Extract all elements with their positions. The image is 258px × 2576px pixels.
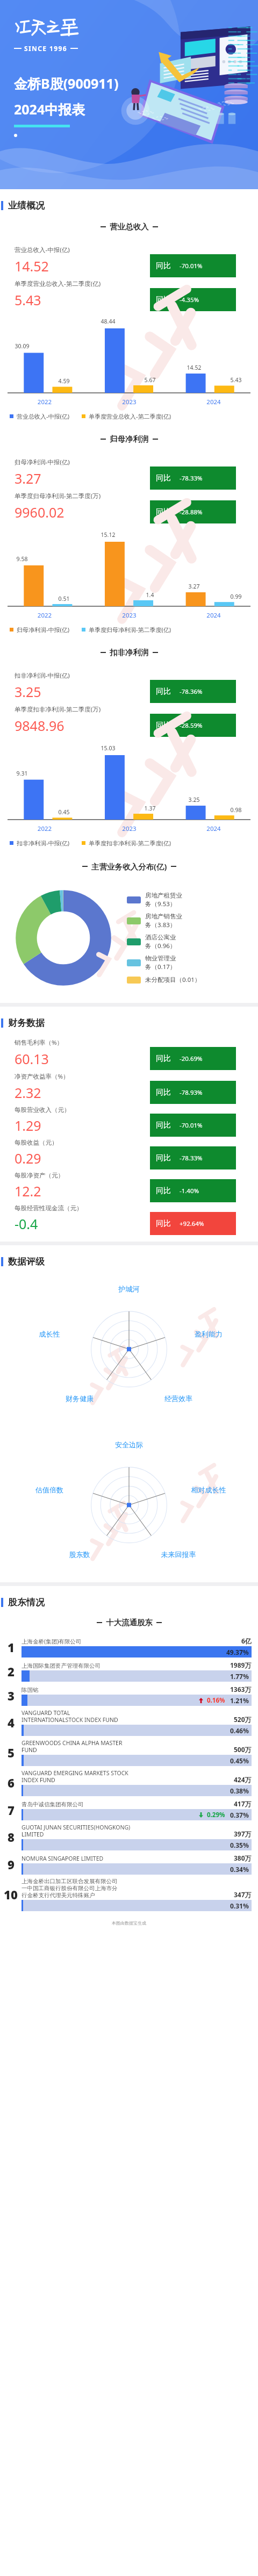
staticText: 单季度营业总收入-第二季度(亿) xyxy=(89,412,171,420)
staticText: 49.37% xyxy=(226,1648,249,1656)
staticText: 5 xyxy=(8,1745,15,1761)
button[interactable]: 酒店公寓业 务（0.96） xyxy=(127,934,255,950)
button[interactable]: 10 xyxy=(0,1878,258,1911)
staticText: 14.52 xyxy=(15,257,49,275)
button[interactable]: 单季度归母净利润-第二季度(万) xyxy=(0,490,258,523)
staticText: 1.37 xyxy=(140,805,160,812)
staticText: 0.45% xyxy=(230,1756,249,1765)
button[interactable]: 业绩概况 xyxy=(0,200,258,211)
button[interactable]: 每股经营性现金流（元） xyxy=(0,1202,258,1235)
staticText: GUOTAI JUNAN SECURITIES(HONGKONG) LIMITE… xyxy=(21,1824,231,1838)
button[interactable]: 未分配项目（0.01） xyxy=(127,975,255,984)
button[interactable]: 房地产销售业 务（3.83） xyxy=(127,913,255,929)
staticText: 9.31 xyxy=(12,770,32,777)
button[interactable]: 4 xyxy=(0,1709,258,1736)
staticText: 0.31% xyxy=(230,1901,249,1910)
button[interactable]: 9 xyxy=(0,1854,258,1875)
staticText: +92.64% xyxy=(180,1219,204,1228)
staticText: 10 xyxy=(4,1886,18,1903)
staticText: 2024 xyxy=(171,398,256,406)
staticText: 1.77% xyxy=(230,1672,249,1681)
staticText: 2.32 xyxy=(15,1084,41,1102)
staticText: 酒店公寓业 务（0.96） xyxy=(145,934,176,950)
button[interactable]: 5 xyxy=(0,1739,258,1766)
staticText: -78.33% xyxy=(180,1154,203,1163)
staticText: 3.27 xyxy=(15,469,41,487)
staticText: 同比 xyxy=(156,261,171,271)
button[interactable]: 房地产租赁业 务（9.53） xyxy=(127,892,255,908)
staticText: 每股经营性现金流（元） xyxy=(15,1204,83,1212)
button[interactable]: 销售毛利率（%） xyxy=(0,1036,258,1070)
staticText: 经营效率 xyxy=(161,1394,196,1403)
staticText: 2022 xyxy=(2,611,87,620)
staticText: -1.40% xyxy=(180,1187,199,1195)
staticText: 每股营业收入（元） xyxy=(15,1106,70,1114)
button[interactable]: 6 xyxy=(0,1769,258,1796)
staticText: 营业总收入-中报(亿) xyxy=(15,246,70,254)
staticText: 0.34% xyxy=(230,1865,249,1874)
staticText: 9960.02 xyxy=(15,503,64,521)
staticText: 主营业务收入分布(亿) xyxy=(91,861,167,872)
staticText: 15.03 xyxy=(98,744,118,752)
button[interactable]: 物业管理业 务（0.17） xyxy=(127,955,255,971)
staticText: 6 xyxy=(8,1775,15,1791)
staticText: 未分配项目（0.01） xyxy=(145,975,201,984)
staticText: 上海国际集团资产管理有限公司 xyxy=(21,1662,227,1669)
button[interactable]: 2 xyxy=(0,1661,258,1682)
button[interactable]: 每股营业收入（元） xyxy=(0,1104,258,1137)
staticText: 2 xyxy=(8,1663,15,1680)
staticText: 2023 xyxy=(87,611,171,620)
staticText: 同比 xyxy=(156,473,171,483)
button[interactable]: 扣非净利润-中报(亿) xyxy=(0,669,258,703)
staticText: 业绩概况 xyxy=(8,200,45,211)
staticText: 1.21% xyxy=(230,1696,249,1705)
button[interactable]: 净资产收益率（%） xyxy=(0,1070,258,1104)
staticText: 同比 xyxy=(156,1054,171,1064)
staticText: 股东数 xyxy=(62,1550,97,1559)
staticText: GREENWOODS CHINA ALPHA MASTER FUND xyxy=(21,1739,231,1754)
staticText: 0.99 xyxy=(226,593,246,600)
staticText: -28.88% xyxy=(180,508,203,516)
button[interactable]: 1 xyxy=(0,1637,258,1657)
staticText: VANGUARD EMERGING MARKETS STOCK INDEX FU… xyxy=(21,1769,231,1784)
staticText: 380万 xyxy=(234,1854,252,1862)
staticText: 1.4 xyxy=(140,591,160,599)
staticText: 3.27 xyxy=(184,583,204,590)
button[interactable]: 财务数据 xyxy=(0,1017,258,1029)
staticText: 14.52 xyxy=(184,364,204,371)
button[interactable]: 股东情况 xyxy=(0,1597,258,1608)
button[interactable]: 单季度扣非净利润-第二季度(万) xyxy=(0,703,258,737)
staticText: -70.01% xyxy=(180,1121,203,1130)
button[interactable]: 归母净利润-中报(亿) xyxy=(0,456,258,490)
staticText: 估值倍数 xyxy=(32,1486,67,1494)
staticText: 0.16% xyxy=(207,1696,225,1705)
staticText: 5.43 xyxy=(15,291,41,309)
staticText: 同比 xyxy=(156,1219,171,1229)
staticText: 每股收益（元） xyxy=(15,1139,58,1146)
staticText: 同比 xyxy=(156,295,171,305)
button[interactable]: 营业总收入-中报(亿) xyxy=(0,243,258,277)
staticText: 上海金桥(集团)有限公司 xyxy=(21,1638,238,1645)
staticText: 1 xyxy=(8,1639,15,1655)
button[interactable]: 单季度营业总收入-第二季度(亿) xyxy=(0,277,258,311)
button[interactable]: 3 xyxy=(0,1685,258,1706)
staticText: 金桥B股(900911) xyxy=(14,74,119,92)
staticText: 营业总收入 xyxy=(110,222,149,232)
button[interactable]: 8 xyxy=(0,1824,258,1850)
staticText: 归母净利润 xyxy=(110,434,149,444)
staticText: 同比 xyxy=(156,1121,171,1130)
button[interactable]: 每股净资产（元） xyxy=(0,1169,258,1202)
staticText: 单季度扣非净利润-第二季度(万) xyxy=(15,705,101,714)
staticText: 0.35% xyxy=(230,1841,249,1849)
staticText: 2024中报表 xyxy=(14,100,85,118)
staticText: 424万 xyxy=(234,1775,252,1784)
staticText: 房地产销售业 务（3.83） xyxy=(145,913,182,929)
button[interactable]: 每股收益（元） xyxy=(0,1137,258,1169)
staticText: SINCE 1996 xyxy=(24,44,68,53)
button[interactable]: 7 xyxy=(0,1799,258,1820)
staticText: 护城河 xyxy=(111,1285,147,1293)
button[interactable]: 数据评级 xyxy=(0,1256,258,1267)
staticText: 房地产租赁业 务（9.53） xyxy=(145,892,182,908)
staticText: 60.13 xyxy=(15,1050,49,1068)
staticText: 扣非净利润-中报(亿) xyxy=(15,671,70,680)
